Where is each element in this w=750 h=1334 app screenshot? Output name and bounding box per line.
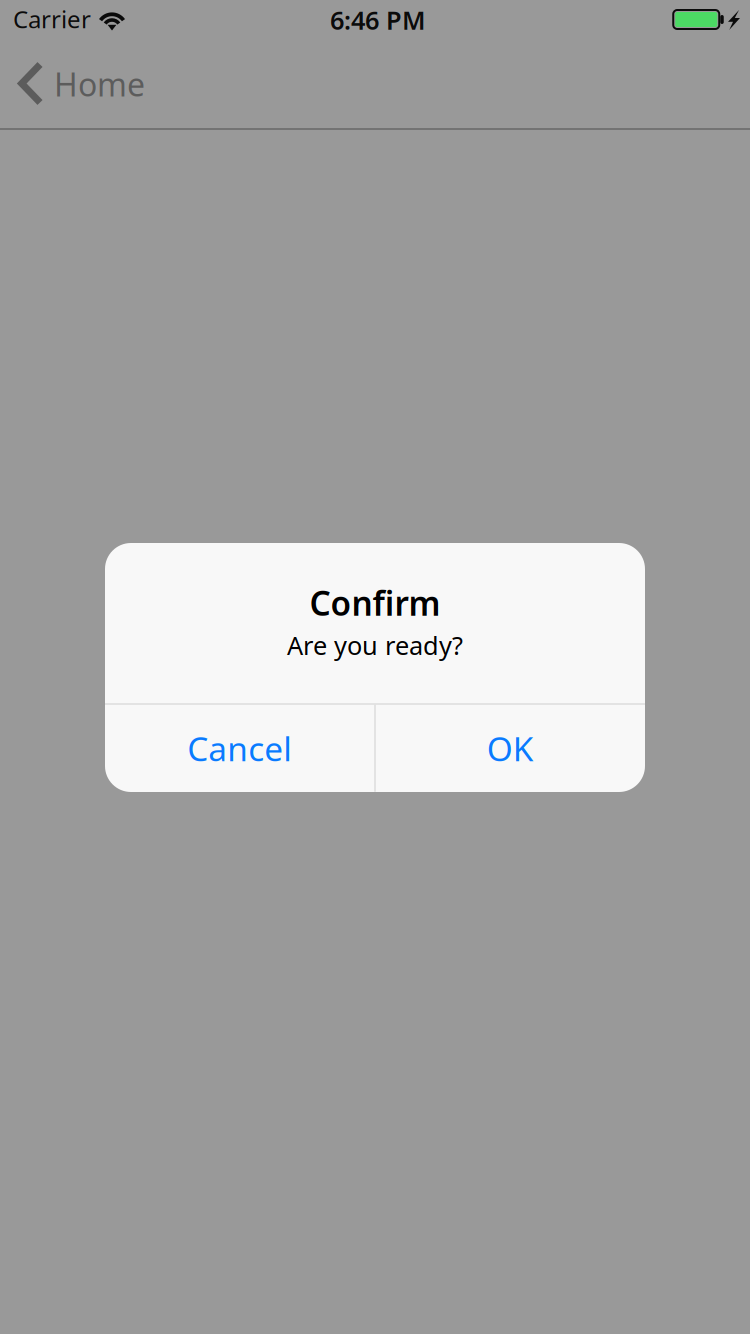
staticText: OK: [487, 726, 534, 770]
button[interactable]: Back to Home: [0, 47, 161, 121]
staticText: 6:46 PM: [330, 3, 426, 37]
staticText: Confirm: [309, 581, 440, 625]
staticText: Home: [54, 63, 145, 105]
staticText: Are you ready?: [287, 628, 463, 662]
button[interactable]: Cancel: [105, 705, 374, 792]
button[interactable]: OK: [376, 705, 645, 792]
staticText: Carrier: [13, 3, 91, 35]
staticText: Cancel: [187, 726, 292, 770]
